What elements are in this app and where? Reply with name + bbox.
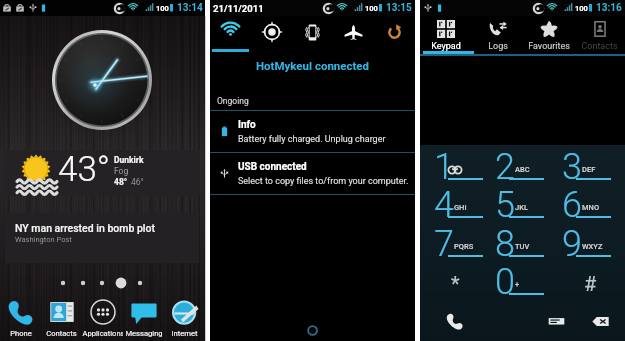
button[interactable]: Contacts bbox=[41, 294, 82, 341]
staticText: 13:14 bbox=[177, 2, 203, 14]
staticText: Select to copy files to/from your comput… bbox=[238, 176, 409, 187]
button[interactable]: Backspace bbox=[582, 304, 618, 338]
button[interactable] bbox=[483, 150, 547, 188]
staticText: JKL bbox=[515, 203, 528, 212]
button[interactable] bbox=[483, 188, 547, 226]
staticText: 5 bbox=[495, 184, 515, 226]
staticText: PQRS bbox=[454, 242, 474, 251]
staticText: 100 bbox=[575, 4, 588, 13]
staticText: TUV bbox=[515, 242, 530, 251]
staticText: Logs bbox=[488, 41, 508, 52]
staticText: 43° bbox=[58, 149, 111, 190]
staticText: 21/11/2011 bbox=[213, 3, 264, 14]
button[interactable] bbox=[422, 188, 486, 226]
button[interactable]: USB connected bbox=[210, 153, 415, 194]
staticText: 0 bbox=[495, 261, 515, 303]
staticText: HotMykeul connected bbox=[210, 59, 415, 72]
staticText: Battery fully charged. Unplug charger bbox=[238, 134, 386, 145]
staticText: Info bbox=[238, 119, 256, 131]
staticText: 48° bbox=[114, 177, 128, 187]
staticText: ABC bbox=[515, 165, 530, 174]
staticText: Dunkirk bbox=[114, 155, 144, 165]
staticText: Fog bbox=[114, 166, 129, 176]
button[interactable]: NY man arrested in bomb plot bbox=[5, 213, 199, 263]
staticText: Contacts bbox=[581, 41, 618, 52]
staticText: NY man arrested in bomb plot bbox=[15, 222, 155, 234]
button[interactable]: 43° bbox=[5, 150, 200, 196]
staticText: 13:16 bbox=[596, 2, 622, 14]
staticText: Contacts bbox=[46, 329, 77, 338]
staticText: 3 bbox=[562, 146, 582, 188]
button[interactable]: Favourites bbox=[523, 16, 574, 54]
button[interactable] bbox=[422, 227, 486, 265]
staticText: # bbox=[584, 272, 597, 295]
staticText: Internet bbox=[171, 329, 198, 338]
button[interactable]: Auto rotate bbox=[374, 16, 415, 48]
button[interactable] bbox=[483, 227, 547, 265]
staticText: Phone bbox=[10, 329, 32, 338]
button[interactable] bbox=[550, 150, 614, 188]
staticText: 9 bbox=[562, 223, 582, 265]
button[interactable]: GPS bbox=[251, 16, 292, 48]
staticText: Favourites bbox=[528, 41, 570, 52]
staticText: 13:15 bbox=[386, 2, 412, 14]
staticText: MNO bbox=[582, 203, 600, 212]
button[interactable] bbox=[483, 265, 547, 303]
button[interactable]: Internet bbox=[164, 294, 205, 341]
staticText: + bbox=[515, 280, 520, 289]
staticText: DEF bbox=[582, 165, 596, 174]
button[interactable]: Contacts bbox=[574, 16, 625, 54]
button[interactable]: Wi-Fi bbox=[210, 16, 251, 48]
button[interactable]: Keyboard bbox=[538, 304, 574, 338]
button[interactable]: Logs bbox=[472, 16, 523, 54]
staticText: Washington Post bbox=[15, 235, 72, 244]
staticText: 100 bbox=[365, 4, 378, 13]
staticText: Applications bbox=[82, 329, 123, 338]
button[interactable]: Info bbox=[210, 111, 415, 152]
button[interactable] bbox=[550, 227, 614, 265]
staticText: 4 bbox=[434, 184, 454, 226]
staticText: Ongoing bbox=[217, 96, 249, 106]
staticText: 7 bbox=[434, 223, 454, 265]
staticText: 8 bbox=[495, 223, 515, 265]
button[interactable]: Applications bbox=[82, 294, 123, 341]
staticText: 1 bbox=[434, 146, 454, 188]
button[interactable] bbox=[550, 188, 614, 226]
button[interactable]: Messaging bbox=[123, 294, 164, 341]
button[interactable]: # bbox=[558, 264, 622, 302]
button[interactable]: Keypad bbox=[420, 16, 472, 54]
button[interactable] bbox=[422, 150, 486, 188]
staticText: Messaging bbox=[125, 329, 163, 338]
button[interactable]: Phone bbox=[0, 294, 41, 341]
button[interactable]: * bbox=[423, 264, 487, 302]
staticText: WXYZ bbox=[582, 242, 603, 251]
button[interactable]: Vibrate bbox=[292, 16, 333, 48]
button[interactable]: Airplane mode bbox=[333, 16, 374, 48]
staticText: 100 bbox=[156, 4, 169, 13]
button[interactable]: Call bbox=[435, 304, 475, 338]
staticText: Keypad bbox=[431, 41, 461, 52]
staticText: 2 bbox=[495, 146, 515, 188]
staticText: USB connected bbox=[238, 161, 307, 173]
staticText: 6 bbox=[562, 184, 582, 226]
staticText: 46° bbox=[131, 177, 144, 187]
staticText: GHI bbox=[454, 203, 467, 212]
staticText: * bbox=[451, 272, 460, 295]
